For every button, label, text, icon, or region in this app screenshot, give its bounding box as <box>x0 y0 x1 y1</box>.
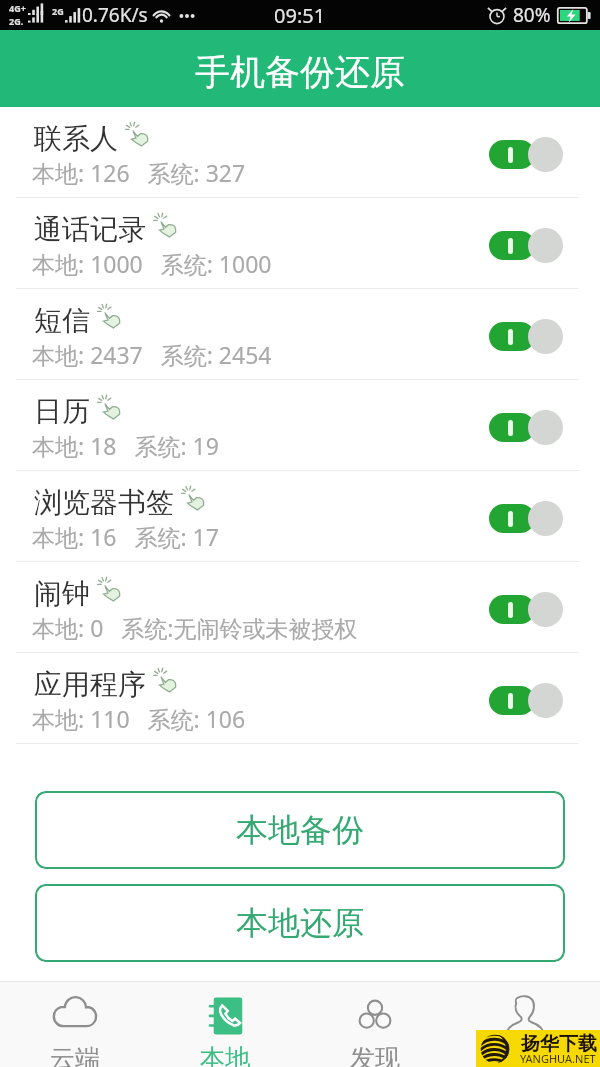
button[interactable]: 本地 <box>150 982 300 1067</box>
staticText: 80% <box>513 2 551 28</box>
button[interactable]: 本地还原 <box>35 884 565 962</box>
button[interactable]: 开关 <box>489 318 563 354</box>
staticText: 发现 <box>350 1043 400 1067</box>
staticText: 通话记录 <box>34 212 146 247</box>
staticText: 日历 <box>34 394 90 429</box>
button[interactable]: 浏览器书签 <box>0 471 600 562</box>
button[interactable]: 应用程序 <box>0 653 600 744</box>
staticText: YANGHUA.NET <box>520 1051 596 1066</box>
staticText: 联系人 <box>34 121 118 156</box>
staticText: 应用程序 <box>34 667 146 702</box>
button[interactable]: 开关 <box>489 591 563 627</box>
staticText: 本地: 126 系统: 327 <box>32 157 246 188</box>
staticText: 浏览器书签 <box>34 485 174 520</box>
staticText: 云端 <box>50 1043 100 1067</box>
button[interactable]: 我的 <box>450 982 600 1067</box>
staticText: 本地: 1000 系统: 1000 <box>32 248 272 279</box>
button[interactable]: 开关 <box>489 500 563 536</box>
staticText: 2G <box>52 5 64 17</box>
staticText: 0.76K/s <box>82 2 148 28</box>
staticText: 本地备份 <box>236 810 364 850</box>
staticText: 2G. <box>9 15 24 27</box>
button[interactable]: 开关 <box>489 409 563 445</box>
staticText: 我的 <box>500 1043 550 1067</box>
staticText: 09:51 <box>274 2 326 29</box>
staticText: 扬华下载 <box>521 1032 597 1056</box>
staticText: 本地: 16 系统: 17 <box>32 521 219 552</box>
button[interactable]: 发现 <box>300 982 450 1067</box>
button[interactable]: 开关 <box>489 227 563 263</box>
staticText: 闹钟 <box>34 576 90 611</box>
button[interactable]: 云端 <box>0 982 150 1067</box>
button[interactable]: 开关 <box>489 682 563 718</box>
staticText: 本地还原 <box>236 903 364 943</box>
button[interactable]: 本地备份 <box>35 791 565 869</box>
button[interactable]: 联系人 <box>0 107 600 198</box>
staticText: 短信 <box>34 303 90 338</box>
staticText: 本地: 110 系统: 106 <box>32 703 246 734</box>
button[interactable]: 开关 <box>489 136 563 172</box>
staticText: 本地: 0 系统:无闹铃或未被授权 <box>32 612 358 643</box>
staticText: 本地: 2437 系统: 2454 <box>32 339 272 370</box>
button[interactable]: 通话记录 <box>0 198 600 289</box>
staticText: 本地 <box>200 1043 250 1067</box>
button[interactable]: 闹钟 <box>0 562 600 653</box>
staticText: 手机备份还原 <box>195 50 405 94</box>
button[interactable]: 短信 <box>0 289 600 380</box>
staticText: 本地: 18 系统: 19 <box>32 430 219 461</box>
button[interactable]: 日历 <box>0 380 600 471</box>
staticText: 4G+ <box>9 2 26 14</box>
